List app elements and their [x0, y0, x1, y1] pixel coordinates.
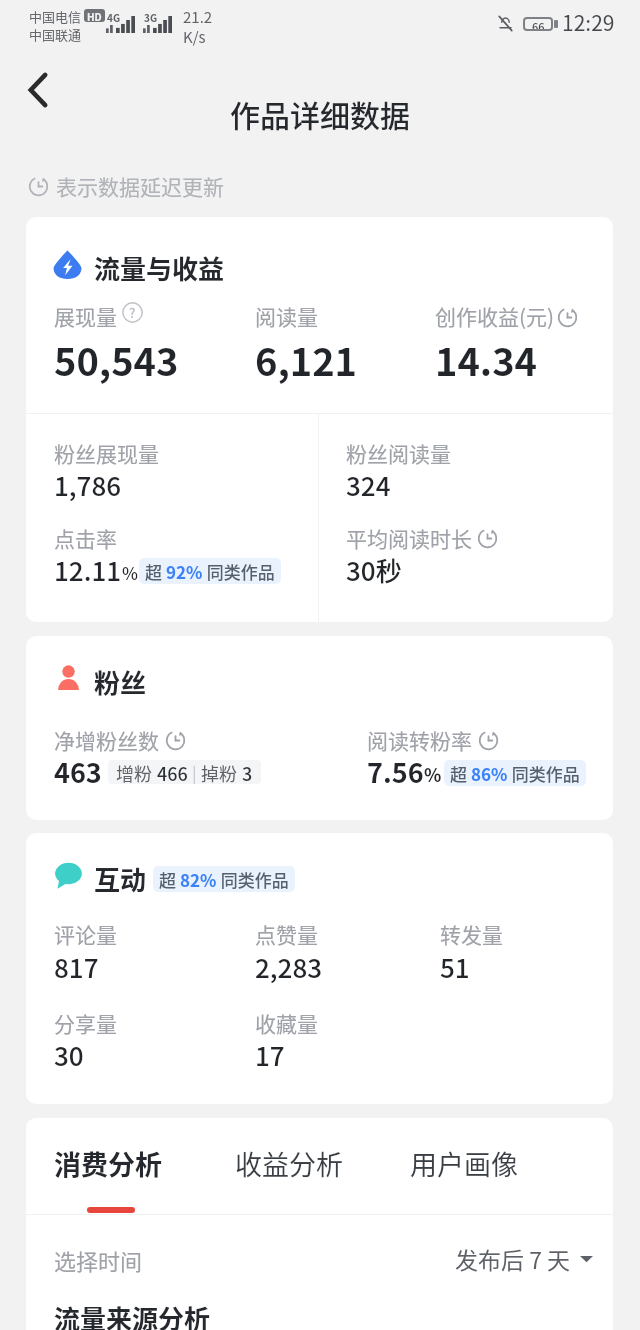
- staticText: %: [122, 560, 138, 585]
- staticText: 12:29: [562, 7, 615, 37]
- staticText: 17: [255, 1036, 285, 1074]
- staticText: 3: [242, 760, 253, 784]
- staticText: 14.34: [435, 332, 538, 387]
- staticText: 收藏量: [255, 1008, 318, 1038]
- staticText: 选择时间: [54, 1244, 143, 1276]
- staticText: 流量与收益: [94, 249, 225, 287]
- staticText: 点赞量: [255, 919, 318, 949]
- staticText: %: [424, 761, 442, 787]
- staticText: 展现量: [54, 301, 117, 331]
- staticText: 4G: [107, 10, 121, 24]
- staticText: 3G: [144, 10, 158, 24]
- staticText: 收益分析: [235, 1144, 343, 1183]
- button[interactable]: 收益分析: [235, 1144, 370, 1204]
- staticText: 中国电信: [29, 7, 82, 26]
- staticText: 同类作品: [203, 559, 275, 584]
- staticText: 466: [157, 760, 188, 784]
- staticText: 86%: [471, 761, 508, 786]
- staticText: 12.11: [54, 551, 122, 589]
- button[interactable]: 消费分析: [54, 1144, 189, 1204]
- staticText: 30秒: [346, 551, 402, 589]
- staticText: 6,121: [255, 332, 358, 387]
- staticText: K/s: [183, 26, 206, 48]
- staticText: 增粉: [116, 760, 157, 784]
- staticText: 同类作品: [508, 761, 580, 786]
- staticText: 转发量: [440, 919, 503, 949]
- staticText: 7.56: [367, 752, 424, 791]
- staticText: 互动: [94, 860, 147, 898]
- staticText: 2,283: [255, 948, 323, 986]
- staticText: 463: [54, 752, 102, 791]
- staticText: 51: [440, 948, 470, 986]
- staticText: 评论量: [54, 919, 117, 949]
- staticText: 创作收益(元): [435, 301, 555, 331]
- staticText: 超: [145, 559, 166, 584]
- staticText: 同类作品: [217, 867, 289, 892]
- staticText: 掉粉: [201, 760, 242, 784]
- staticText: 消费分析: [54, 1144, 162, 1183]
- staticText: ?: [129, 303, 136, 322]
- staticText: 分享量: [54, 1008, 117, 1038]
- staticText: 净增粉丝数: [54, 725, 159, 755]
- staticText: 50,543: [54, 332, 179, 387]
- button[interactable]: 用户画像: [410, 1144, 545, 1204]
- staticText: 66: [532, 19, 545, 29]
- button[interactable]: 发布后 7 天: [455, 1242, 593, 1275]
- staticText: 发布后 7 天: [455, 1242, 571, 1275]
- staticText: HD: [87, 9, 102, 22]
- staticText: 21.2: [183, 6, 213, 28]
- staticText: 作品详细数据: [230, 92, 410, 135]
- staticText: 超: [159, 867, 180, 892]
- staticText: 平均阅读时长: [346, 523, 472, 553]
- staticText: 817: [54, 948, 99, 986]
- staticText: 92%: [166, 559, 203, 584]
- staticText: 表示数据延迟更新: [56, 171, 224, 201]
- staticText: 中国联通: [29, 25, 82, 44]
- staticText: 82%: [180, 867, 217, 892]
- staticText: 阅读量: [255, 301, 318, 331]
- staticText: 粉丝展现量: [54, 438, 159, 468]
- staticText: 1,786: [54, 466, 122, 504]
- staticText: 324: [346, 466, 391, 504]
- staticText: 流量来源分析: [54, 1299, 211, 1330]
- staticText: 用户画像: [410, 1144, 518, 1183]
- staticText: 超: [450, 761, 471, 786]
- staticText: 点击率: [54, 523, 117, 553]
- staticText: 30: [54, 1036, 84, 1074]
- staticText: 粉丝阅读量: [346, 438, 451, 468]
- staticText: 阅读转粉率: [367, 725, 472, 755]
- staticText: 粉丝: [94, 663, 147, 701]
- button[interactable]: Back: [13, 65, 63, 115]
- staticText: |: [188, 760, 201, 784]
